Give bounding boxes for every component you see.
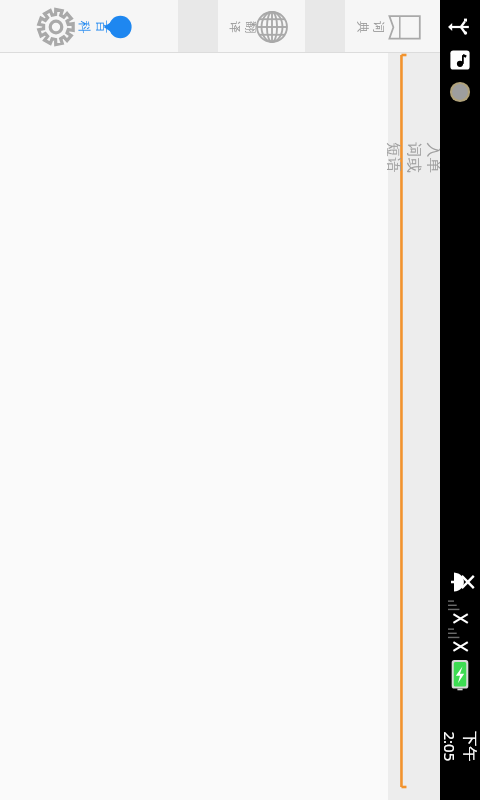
staticText: 请输入单词或短语 <box>383 142 463 183</box>
button[interactable]: 词典 <box>345 0 440 53</box>
button[interactable]: 翻译 <box>218 0 305 53</box>
other: Silent mode <box>445 568 475 596</box>
staticText: 百科 <box>76 19 110 35</box>
staticText: 下午 2:05 <box>439 731 480 765</box>
button[interactable]: 百科 <box>0 0 178 53</box>
other: Music playing <box>448 48 472 72</box>
button[interactable]: 请输入单词或短语 <box>399 53 440 800</box>
other: No SIM 2 signal <box>445 626 475 652</box>
other: No SIM 1 signal <box>445 598 475 624</box>
other: USB connected <box>447 14 473 40</box>
staticText: 翻译 <box>227 19 259 35</box>
staticText: 词典 <box>355 19 387 35</box>
other: Battery charging <box>447 658 473 692</box>
